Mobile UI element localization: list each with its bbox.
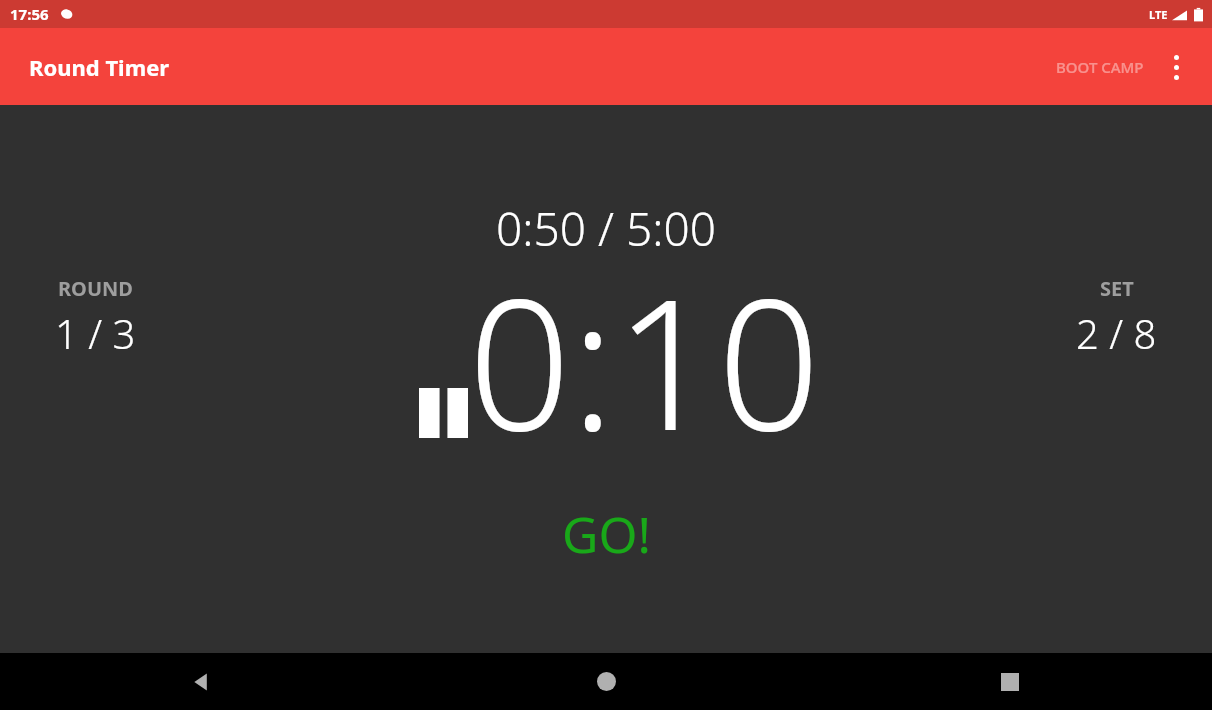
button[interactable]: ROUND [18, 275, 173, 360]
staticText: BOOT CAMP [1056, 57, 1144, 77]
staticText: 0:10 [468, 238, 821, 483]
button[interactable]: 0:50 / 5:00 [496, 197, 716, 260]
staticText: 2 / 8 [1076, 306, 1157, 360]
staticText: 17:56 [10, 4, 49, 24]
staticText: SET [1100, 275, 1134, 302]
staticText: Round Timer [29, 52, 170, 82]
button[interactable]: SET [1039, 275, 1194, 360]
staticText: LTE [1149, 7, 1168, 22]
button[interactable]: Back [0, 653, 404, 710]
button[interactable]: Pause timer [0, 290, 1212, 535]
button[interactable]: Recent apps [808, 653, 1212, 710]
staticText: ROUND [58, 275, 133, 302]
button[interactable]: Home [404, 653, 808, 710]
button[interactable]: More options [1152, 43, 1200, 91]
staticText: 1 / 3 [55, 306, 136, 360]
button[interactable]: BOOT CAMP [1048, 47, 1152, 87]
button[interactable]: GO! [562, 500, 651, 568]
